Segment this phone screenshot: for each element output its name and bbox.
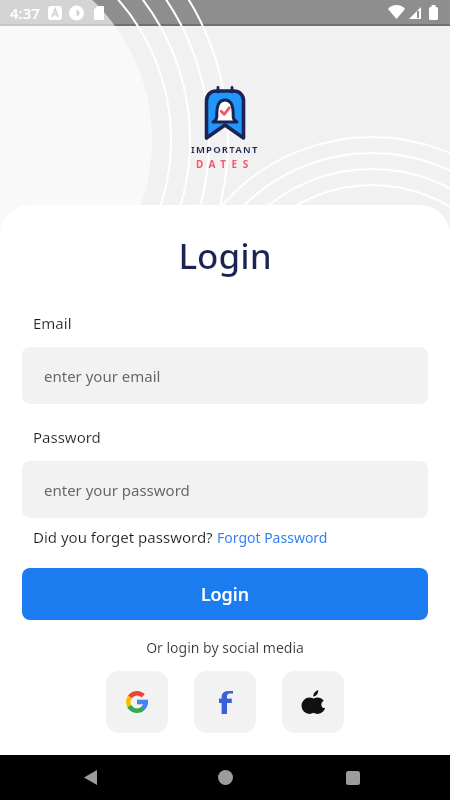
button[interactable] <box>106 671 168 733</box>
button[interactable]: Forgot Password <box>217 528 328 547</box>
staticText: IMPORTANT <box>191 143 259 156</box>
button[interactable] <box>208 765 242 790</box>
button[interactable] <box>73 765 107 790</box>
staticText: enter your password <box>44 480 190 500</box>
staticText: Login <box>22 232 428 280</box>
staticText: 4:37 <box>10 3 40 23</box>
staticText: Email <box>33 313 72 333</box>
staticText: Did you forget password? <box>33 527 217 547</box>
button[interactable] <box>282 671 344 733</box>
staticText: Login <box>201 582 249 607</box>
button[interactable]: Login <box>22 568 428 620</box>
button[interactable]: enter your email <box>22 347 428 404</box>
button[interactable] <box>336 765 370 790</box>
staticText: Or login by social media <box>22 638 428 657</box>
button[interactable]: enter your password <box>22 461 428 518</box>
staticText: DATES <box>196 157 254 171</box>
staticText: Password <box>33 427 101 447</box>
button[interactable] <box>194 671 256 733</box>
staticText: enter your email <box>44 366 161 386</box>
